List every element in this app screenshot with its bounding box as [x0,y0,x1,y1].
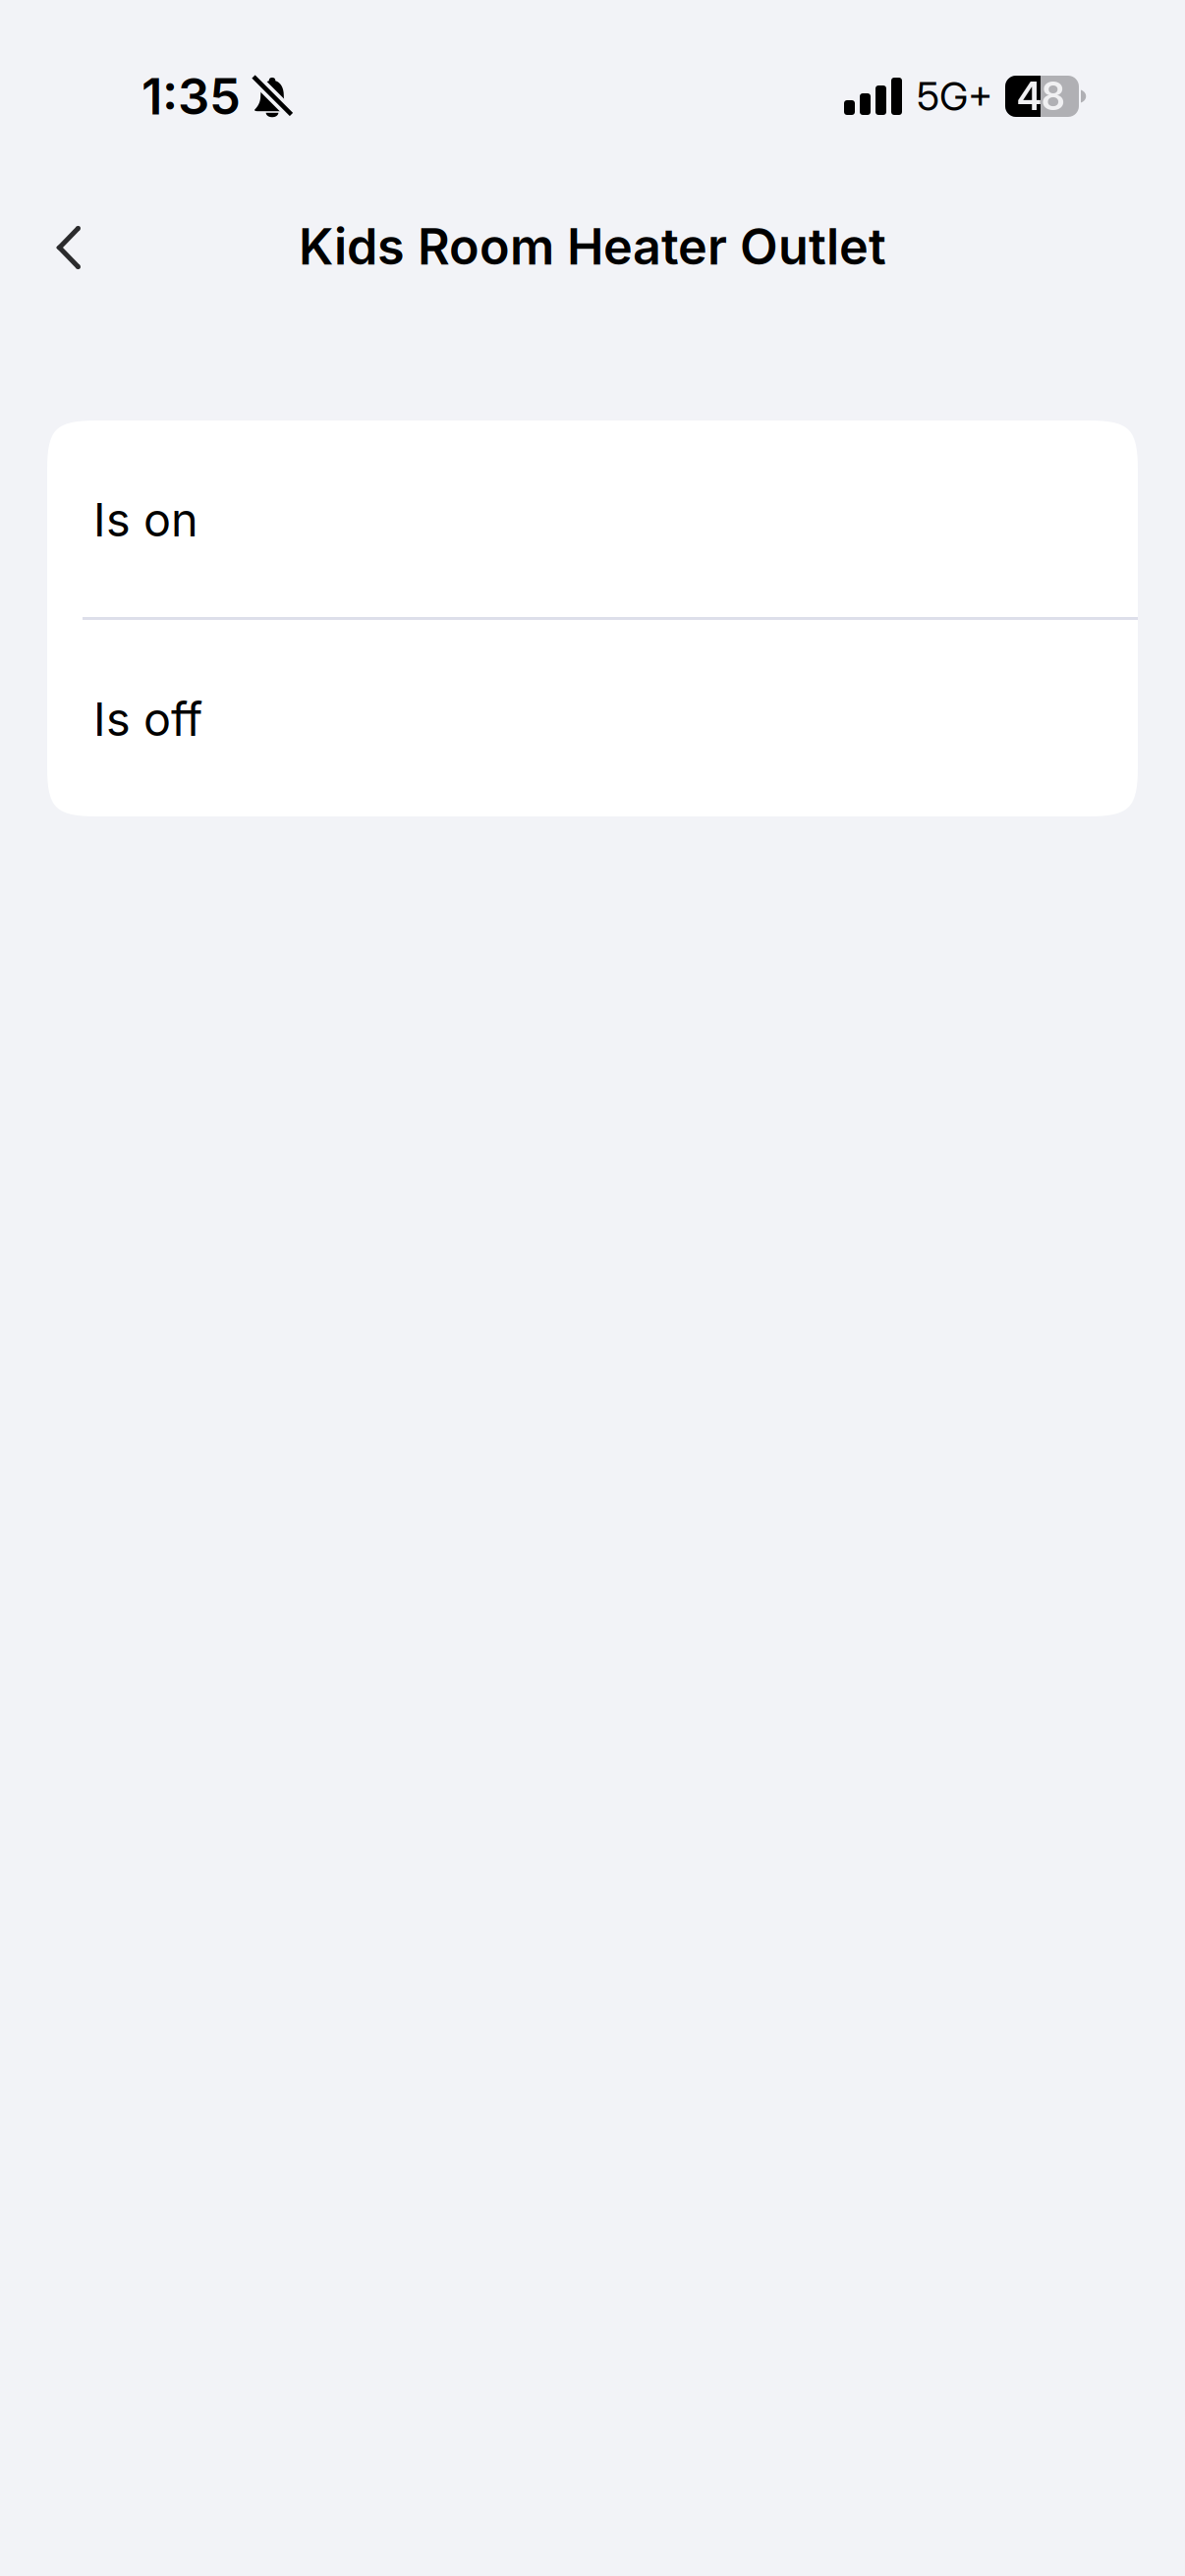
staticText: 5G+ [917,73,992,120]
navigationBar: Kids Room Heater Outlet [0,202,1185,289]
staticText: Is on [93,492,198,548]
staticText: 48 [1017,73,1065,119]
button[interactable]: Is on [47,420,1138,617]
staticText: Kids Room Heater Outlet [299,217,886,276]
button[interactable]: Is off [47,620,1138,816]
button[interactable]: Back [26,202,112,289]
staticText: Is off [93,691,202,747]
staticText: 1:35 [141,66,241,126]
